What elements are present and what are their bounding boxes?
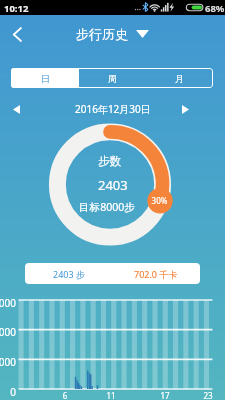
- staticText: 步数: [98, 154, 121, 168]
- button[interactable]: Previous day: [6, 99, 26, 119]
- staticText: 10:12: [4, 2, 29, 15]
- staticText: 月: [175, 73, 184, 84]
- staticText: 2403: [98, 176, 128, 194]
- button[interactable]: 周: [79, 68, 146, 88]
- button[interactable]: 日: [11, 68, 79, 88]
- staticText: 30%: [148, 195, 171, 206]
- button[interactable]: Next day: [175, 99, 195, 119]
- staticText: 0: [0, 385, 16, 399]
- staticText: 日: [41, 73, 50, 84]
- staticText: 11: [101, 390, 121, 400]
- staticText: 68%: [205, 2, 225, 15]
- button[interactable]: 步行历史: [72, 24, 153, 44]
- staticText: 23: [198, 390, 218, 400]
- staticText: 周: [108, 73, 117, 84]
- staticText: 目标8000步: [79, 200, 136, 214]
- staticText: 702.0 千卡: [134, 268, 178, 280]
- staticText: 步行历史: [76, 26, 128, 42]
- staticText: 17: [155, 390, 175, 400]
- button[interactable]: Back: [5, 22, 29, 46]
- staticText: 3000: [0, 296, 16, 310]
- staticText: 2403 步: [53, 268, 85, 280]
- button[interactable]: 月: [146, 68, 213, 88]
- staticText: 2000: [0, 325, 16, 339]
- button[interactable]: 2403 步: [25, 263, 200, 284]
- staticText: 6: [55, 390, 75, 400]
- staticText: 1000: [0, 355, 16, 369]
- staticText: 2016年12月30日: [75, 102, 151, 116]
